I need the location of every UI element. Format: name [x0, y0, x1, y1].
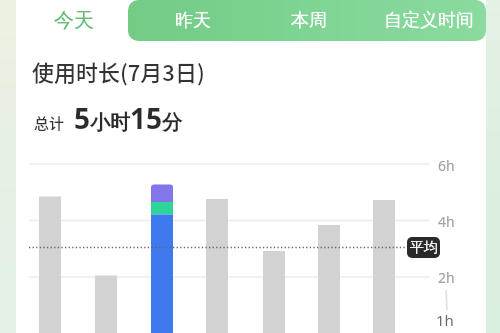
staticText: 5小时15分 [74, 99, 183, 137]
staticText: 使用时长(7月3日) [32, 55, 205, 87]
button[interactable]: 昨天 [133, 0, 253, 41]
staticText: 2h [438, 268, 455, 287]
button[interactable]: 自定义时间 [371, 0, 487, 41]
staticText: 自定义时间 [384, 9, 474, 32]
button[interactable]: 今天 [18, 0, 130, 41]
staticText: 昨天 [175, 9, 211, 32]
staticText: 平均 [410, 239, 438, 257]
staticText: 总计 [34, 112, 65, 134]
staticText: 1h [436, 310, 454, 330]
staticText: 本周 [291, 9, 327, 32]
staticText: 今天 [54, 8, 94, 33]
staticText: 6h [438, 156, 455, 175]
staticText: 4h [438, 212, 455, 231]
button[interactable]: 本周 [248, 0, 369, 41]
